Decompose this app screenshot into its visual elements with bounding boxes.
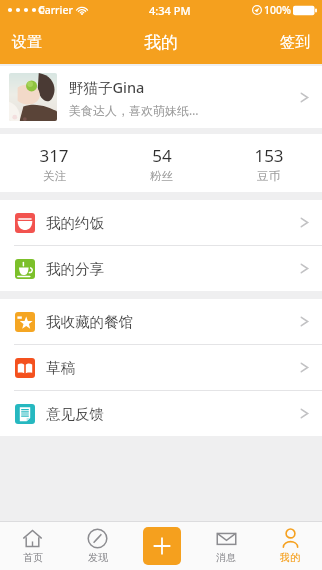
staticText: 首页 xyxy=(23,551,43,564)
button[interactable]: 消息 xyxy=(194,521,258,570)
staticText: 317 xyxy=(39,144,69,167)
staticText: 我的分享 xyxy=(46,260,300,278)
button[interactable]: 签到 xyxy=(268,23,322,62)
button[interactable]: 发现 xyxy=(65,521,130,570)
button[interactable]: 草稿 xyxy=(0,345,322,390)
staticText: 我的 xyxy=(144,32,178,53)
staticText: 4:34 PM xyxy=(149,3,191,18)
staticText: 153 xyxy=(254,144,284,167)
button[interactable]: 54 xyxy=(108,134,215,192)
button[interactable]: 新建 xyxy=(143,527,181,565)
staticText: 美食达人，喜欢萌妹纸… xyxy=(69,102,199,118)
staticText: 关注 xyxy=(43,169,66,183)
staticText: 设置 xyxy=(12,33,42,52)
staticText: Carrier xyxy=(38,3,73,17)
button[interactable]: 我的 xyxy=(258,521,322,570)
staticText: 野猫子Gina xyxy=(69,77,145,97)
staticText: 我的约饭 xyxy=(46,214,300,232)
button[interactable]: 意见反馈 xyxy=(0,391,322,436)
staticText: 签到 xyxy=(280,33,310,52)
staticText: 我的 xyxy=(280,551,300,564)
button[interactable]: 317 xyxy=(0,134,108,192)
staticText: 发现 xyxy=(88,551,108,564)
staticText: 意见反馈 xyxy=(46,405,300,423)
staticText: 草稿 xyxy=(46,359,300,377)
button[interactable]: 设置 xyxy=(0,23,54,62)
button[interactable]: 首页 xyxy=(0,521,65,570)
staticText: 我收藏的餐馆 xyxy=(46,313,300,331)
button[interactable]: 我的分享 xyxy=(0,246,322,291)
button[interactable]: 我的约饭 xyxy=(0,200,322,245)
button[interactable]: 153 xyxy=(215,134,322,192)
staticText: 54 xyxy=(152,144,172,167)
staticText: 消息 xyxy=(216,551,236,564)
staticText: 粉丝 xyxy=(150,169,173,183)
button[interactable]: 野猫子Gina xyxy=(0,66,322,128)
staticText: 100% xyxy=(264,3,291,17)
button[interactable]: 我收藏的餐馆 xyxy=(0,299,322,344)
staticText: 豆币 xyxy=(257,169,280,183)
